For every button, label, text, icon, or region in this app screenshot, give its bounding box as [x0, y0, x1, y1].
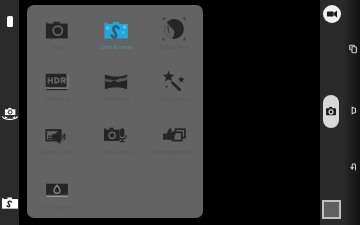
button[interactable]: Home [348, 105, 359, 116]
button[interactable]: Dual camera [87, 121, 145, 155]
button[interactable]: Virtual tour [145, 68, 203, 102]
button[interactable]: Auto [28, 16, 86, 50]
button[interactable]: Record video [323, 5, 341, 23]
button[interactable]: Drama shot [28, 176, 86, 210]
button[interactable]: Rich tone [28, 68, 86, 102]
button[interactable]: Switch camera [1, 104, 19, 120]
staticText: Shot & more [100, 43, 133, 50]
button[interactable]: Gallery [322, 200, 341, 219]
button[interactable]: Back [348, 161, 359, 172]
button[interactable]: Current mode [2, 197, 18, 209]
button[interactable]: Animated photo [145, 121, 203, 155]
button[interactable]: Beauty face [145, 16, 203, 50]
button[interactable]: More options [7, 16, 13, 27]
button[interactable]: Take photo [323, 95, 339, 128]
button[interactable]: Shot & more [87, 16, 145, 50]
button[interactable]: Recents [348, 43, 359, 54]
button[interactable]: Panorama [87, 68, 145, 102]
button[interactable]: Sound & shot [28, 121, 86, 155]
